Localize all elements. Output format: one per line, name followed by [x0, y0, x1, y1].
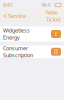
staticText: II — [54, 48, 58, 55]
staticText: New Ticket — [46, 9, 61, 23]
button[interactable]: < — [1, 10, 28, 22]
button[interactable]: I — [51, 30, 61, 38]
staticText: Consumer Subscription — [3, 45, 33, 59]
button[interactable]: II — [51, 48, 61, 56]
staticText: Service — [8, 12, 26, 20]
button[interactable]: New Ticket — [44, 10, 63, 22]
staticText: 9:41 — [3, 1, 13, 9]
staticText: Wi-Fi — [42, 2, 51, 8]
staticText: Widgetless Energy — [3, 27, 30, 41]
staticText: I — [55, 30, 57, 38]
staticText: < — [3, 12, 7, 20]
